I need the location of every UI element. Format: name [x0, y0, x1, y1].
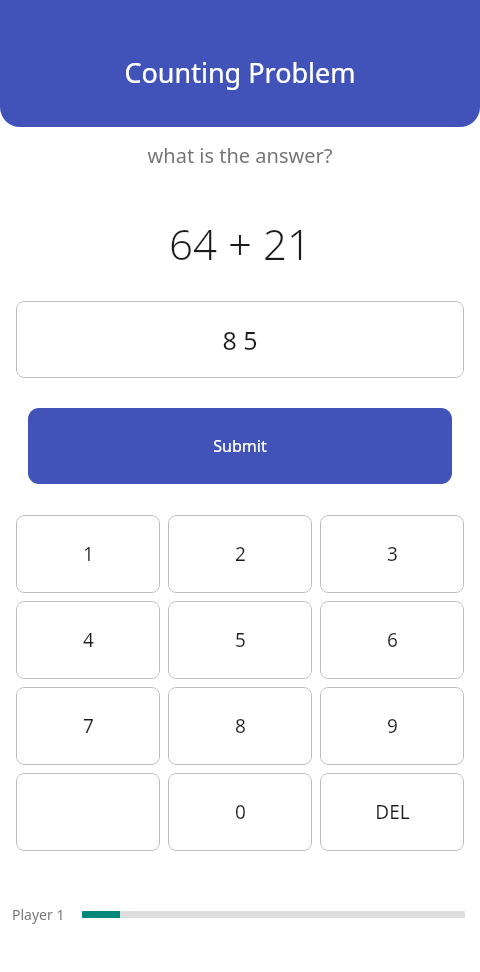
staticText: 3 [387, 541, 398, 567]
button[interactable]: 2 [168, 515, 312, 593]
staticText: 6 [387, 627, 398, 653]
button[interactable]: DEL [320, 773, 464, 851]
button[interactable]: 8 5 [16, 301, 464, 378]
button[interactable]: 4 [16, 601, 160, 679]
button[interactable]: 6 [320, 601, 464, 679]
staticText: Submit [213, 435, 267, 457]
button[interactable]: 7 [16, 687, 160, 765]
staticText: 1 [83, 541, 94, 567]
staticText: what is the answer? [0, 142, 480, 169]
button[interactable]: 5 [168, 601, 312, 679]
button[interactable]: Submit [28, 408, 452, 484]
staticText: DEL [375, 799, 410, 825]
staticText: 7 [83, 713, 94, 739]
staticText: Counting Problem [124, 54, 356, 91]
staticText: 8 [235, 713, 246, 739]
staticText: 4 [83, 627, 94, 653]
staticText: Player 1 [12, 905, 65, 924]
staticText: 64 + 21 [0, 215, 480, 272]
staticText: 2 [235, 541, 246, 567]
button[interactable]: 8 [168, 687, 312, 765]
staticText: 9 [387, 713, 398, 739]
button[interactable]: 9 [320, 687, 464, 765]
button[interactable]: 3 [320, 515, 464, 593]
staticText: 8 5 [222, 323, 258, 357]
button[interactable]: 0 [168, 773, 312, 851]
staticText: 5 [235, 627, 246, 653]
button[interactable] [16, 773, 160, 851]
staticText: 0 [235, 799, 246, 825]
button[interactable]: 1 [16, 515, 160, 593]
